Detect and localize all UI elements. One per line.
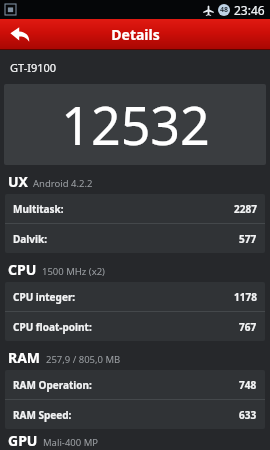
staticText: 1178 <box>234 290 257 304</box>
staticText: RAM Operation: <box>13 378 92 392</box>
staticText: UX <box>8 172 28 191</box>
staticText: RAM Speed: <box>13 408 72 422</box>
button[interactable]: Dalvik: <box>5 224 265 253</box>
button[interactable]: CPU float-point: <box>5 312 265 341</box>
button[interactable]: RAM Operation: <box>5 370 265 399</box>
staticText: 12532 <box>61 89 210 160</box>
button[interactable]: 12532 <box>4 84 266 165</box>
staticText: GPU <box>8 431 38 450</box>
staticText: RAM <box>8 348 41 367</box>
staticText: 767 <box>239 320 257 334</box>
staticText: 23:46 <box>234 2 265 18</box>
staticText: CPU integer: <box>13 290 76 304</box>
staticText: 633 <box>239 408 257 422</box>
button[interactable]: CPU integer: <box>5 282 265 311</box>
staticText: 48 <box>220 5 229 15</box>
staticText: Details <box>111 25 160 44</box>
staticText: Dalvik: <box>13 232 47 246</box>
staticText: Mali-400 MP <box>43 436 99 449</box>
staticText: CPU <box>8 260 37 279</box>
staticText: 257,9 / 805,0 MB <box>46 353 121 366</box>
staticText: 2287 <box>234 202 257 216</box>
staticText: Multitask: <box>13 202 64 216</box>
staticText: GT-I9100 <box>10 60 57 75</box>
button[interactable]: Back <box>0 19 40 50</box>
staticText: 1500 MHz (x2) <box>42 265 105 278</box>
staticText: 577 <box>239 232 257 246</box>
button[interactable]: RAM Speed: <box>5 400 265 429</box>
staticText: 748 <box>239 378 257 392</box>
staticText: Android 4.2.2 <box>33 177 93 190</box>
staticText: CPU float-point: <box>13 320 92 334</box>
button[interactable]: Multitask: <box>5 194 265 223</box>
